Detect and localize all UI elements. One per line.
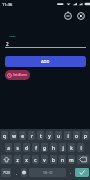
staticText: 4 [32, 131, 34, 134]
button[interactable]: Emoji [21, 168, 27, 177]
staticText: f [35, 145, 37, 151]
button[interactable]: Alarm off [61, 9, 74, 22]
button[interactable]: 1 [1, 131, 8, 140]
staticText: . [70, 170, 71, 175]
button[interactable]: Enter [75, 168, 89, 177]
staticText: , [16, 170, 17, 175]
staticText: m [69, 157, 74, 163]
button[interactable]: n [59, 155, 66, 164]
button[interactable]: Set Alarm [5, 70, 30, 80]
button[interactable]: d [23, 143, 30, 152]
staticText: g [43, 145, 46, 151]
button[interactable]: . [68, 168, 73, 177]
button[interactable]: ADD [5, 56, 86, 67]
staticText: 2 [14, 131, 16, 134]
button[interactable]: a [5, 143, 12, 152]
button[interactable]: x [23, 155, 30, 164]
staticText: x [25, 157, 28, 163]
staticText: 8 [68, 131, 70, 134]
staticText: 6 [50, 131, 52, 134]
staticText: v [43, 157, 46, 163]
staticText: w [12, 133, 16, 139]
staticText: y [48, 133, 51, 139]
button[interactable]: 9 [73, 131, 80, 140]
staticText: a [7, 145, 10, 151]
button[interactable]: m [68, 155, 75, 164]
button[interactable]: h [50, 143, 57, 152]
staticText: q [3, 133, 6, 139]
button[interactable]: Shift [1, 155, 12, 164]
staticText: Set Alarm [13, 73, 28, 77]
button[interactable]: , [13, 168, 19, 177]
button[interactable]: 0 [82, 131, 89, 140]
button[interactable]: z [14, 155, 21, 164]
button[interactable]: 2 [10, 131, 17, 140]
button[interactable]: f [32, 143, 39, 152]
button[interactable]: s [14, 143, 21, 152]
staticText: r [31, 133, 33, 139]
staticText: e [21, 133, 24, 139]
staticText: n [61, 157, 64, 163]
button[interactable]: EN • US [29, 168, 66, 177]
staticText: 0 [86, 131, 88, 134]
staticText: ADD [41, 59, 50, 64]
staticText: 3 [23, 131, 25, 134]
button[interactable]: Close [74, 9, 87, 22]
staticText: s [16, 145, 19, 151]
staticText: p [84, 133, 87, 139]
button[interactable]: 5 [37, 131, 44, 140]
button[interactable]: b [50, 155, 57, 164]
button[interactable]: 3 [19, 131, 26, 140]
staticText: 5 [41, 131, 43, 134]
staticText: t [40, 133, 42, 139]
button[interactable]: g [41, 143, 48, 152]
staticText: Name [9, 35, 16, 38]
button[interactable]: j [59, 143, 66, 152]
staticText: j [62, 145, 64, 151]
button[interactable]: v [41, 155, 48, 164]
button[interactable]: 7 [55, 131, 62, 140]
button[interactable]: 4 [28, 131, 35, 140]
staticText: u [57, 133, 60, 139]
button[interactable]: 6 [46, 131, 53, 140]
button[interactable]: c [32, 155, 39, 164]
staticText: i [67, 133, 69, 139]
staticText: l [80, 145, 82, 151]
staticText: 1 [5, 131, 7, 134]
staticText: o [75, 133, 78, 139]
button[interactable]: Backspace [77, 155, 89, 164]
staticText: k [70, 145, 73, 151]
staticText: 11:36 [2, 2, 13, 7]
staticText: h [52, 145, 55, 151]
staticText: ?123 [3, 171, 10, 175]
button[interactable]: l [77, 143, 84, 152]
staticText: z [16, 157, 19, 163]
button[interactable]: k [68, 143, 75, 152]
staticText: 7 [59, 131, 61, 134]
staticText: b [52, 157, 55, 163]
staticText: EN • US [43, 171, 53, 175]
button[interactable]: ?123 [1, 168, 11, 177]
staticText: d [25, 145, 28, 151]
staticText: 2 [6, 41, 9, 47]
button[interactable]: 8 [64, 131, 71, 140]
staticText: 9 [77, 131, 79, 134]
staticText: c [34, 157, 37, 163]
